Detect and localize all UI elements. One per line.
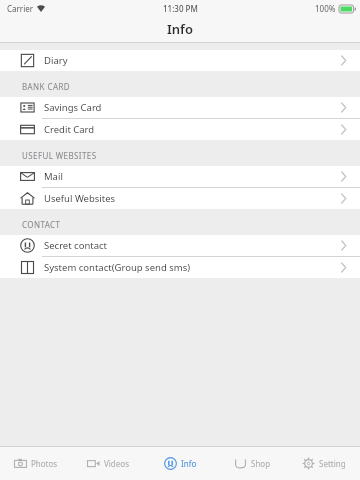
staticText: USEFUL WEBSITES — [22, 150, 97, 161]
button[interactable]: Secret contact — [0, 235, 360, 256]
button[interactable]: Photos — [0, 447, 72, 480]
button[interactable]: Shop — [216, 447, 288, 480]
button[interactable]: Credit Card — [0, 119, 360, 140]
button[interactable]: Savings Card — [0, 97, 360, 118]
button[interactable]: System contact(Group send sms) — [0, 257, 360, 278]
button[interactable]: Useful Websites — [0, 188, 360, 209]
button[interactable]: Videos — [72, 447, 144, 480]
staticText: Diary — [44, 54, 341, 67]
staticText: System contact(Group send sms) — [44, 261, 341, 274]
staticText: Info — [181, 458, 197, 469]
staticText: Photos — [31, 458, 58, 469]
staticText: 100% — [315, 3, 336, 14]
button[interactable]: Info — [144, 447, 216, 480]
staticText: BANK CARD — [22, 81, 71, 92]
staticText: Setting — [319, 458, 346, 469]
staticText: CONTACT — [22, 219, 61, 230]
staticText: Videos — [104, 458, 129, 469]
staticText: 11:30 PM — [163, 3, 198, 14]
staticText: Secret contact — [44, 239, 341, 252]
staticText: Savings Card — [44, 101, 341, 114]
staticText: Info — [167, 20, 193, 38]
button[interactable]: Mail — [0, 166, 360, 187]
staticText: Useful Websites — [44, 192, 341, 205]
staticText: Shop — [251, 458, 271, 469]
staticText: Mail — [44, 170, 341, 183]
staticText: Credit Card — [44, 123, 341, 136]
staticText: Carrier — [7, 3, 34, 14]
button[interactable]: Diary — [0, 50, 360, 71]
button[interactable]: Setting — [288, 447, 360, 480]
